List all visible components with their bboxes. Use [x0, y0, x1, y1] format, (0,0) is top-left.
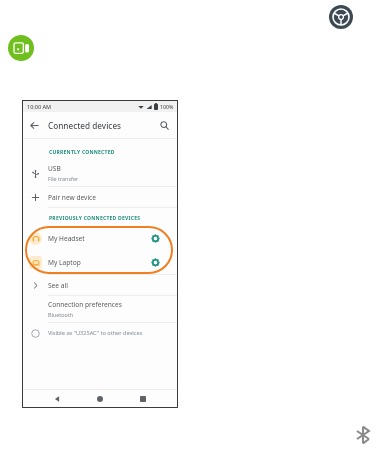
button[interactable]: Device settings: [148, 231, 162, 245]
staticText: File transfer: [48, 175, 79, 182]
staticText: My Laptop: [48, 258, 81, 267]
staticText: CURRENTLY CONNECTED: [49, 149, 115, 156]
staticText: Connected devices: [48, 120, 122, 131]
button[interactable]: See all: [22, 275, 178, 295]
staticText: Connection preferences: [48, 300, 122, 309]
button[interactable]: My Laptop: [22, 250, 178, 274]
button[interactable]: Pair new device: [22, 187, 178, 207]
button[interactable]: Connected devices: [8, 35, 34, 61]
button[interactable]: Device settings: [148, 255, 162, 269]
button[interactable]: USB: [22, 160, 178, 186]
staticText: 10:00 AM: [27, 103, 52, 110]
button[interactable]: Back: [26, 117, 42, 133]
button[interactable]: Recent apps: [135, 391, 151, 407]
button[interactable]: Home: [92, 391, 108, 407]
staticText: See all: [48, 281, 68, 290]
button[interactable]: Back: [49, 391, 65, 407]
staticText: Visible as "U325AC" to other devices: [48, 329, 143, 337]
button[interactable]: Connection preferences: [22, 296, 178, 322]
staticText: USB: [48, 164, 61, 173]
staticText: My Headset: [48, 234, 85, 243]
button[interactable]: My Headset: [22, 226, 178, 250]
staticText: PREVIOUSLY CONNECTED DEVICES: [49, 215, 141, 222]
staticText: Bluetooth: [48, 311, 74, 318]
button[interactable]: Search: [156, 117, 172, 133]
button[interactable]: Driving mode: [329, 5, 353, 29]
button[interactable]: Bluetooth: [352, 424, 374, 446]
button[interactable]: Visible as "U325AC" to other devices: [22, 323, 178, 343]
staticText: Pair new device: [48, 193, 96, 202]
staticText: 100%: [160, 103, 174, 110]
